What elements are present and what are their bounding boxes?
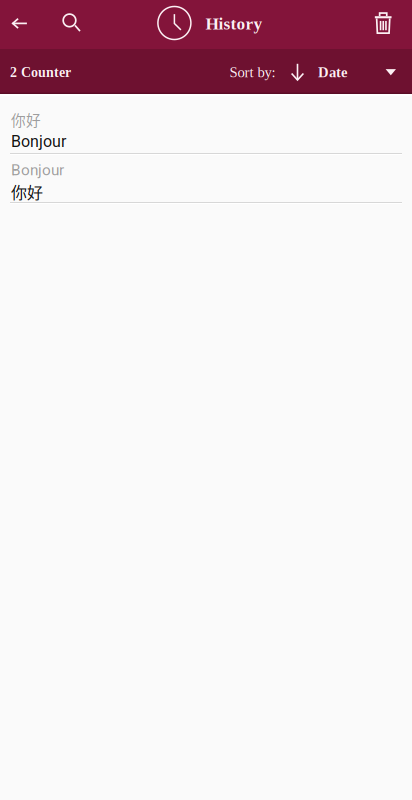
button[interactable]: Date: [318, 55, 396, 89]
button[interactable]: Search: [55, 6, 89, 40]
button[interactable]: Toggle sort direction: [282, 55, 312, 89]
staticText: Bonjour: [11, 132, 66, 151]
staticText: Bonjour: [11, 161, 64, 179]
button[interactable]: 你好: [0, 94, 412, 155]
staticText: Sort by:: [230, 64, 276, 80]
staticText: 2 Counter: [10, 64, 71, 80]
button[interactable]: Back: [3, 6, 37, 40]
staticText: 你好: [11, 109, 41, 130]
staticText: Date: [318, 64, 348, 80]
staticText: History: [205, 14, 262, 33]
button[interactable]: Clear history: [363, 3, 403, 43]
button[interactable]: Bonjour: [0, 155, 412, 204]
staticText: 你好: [11, 180, 43, 203]
